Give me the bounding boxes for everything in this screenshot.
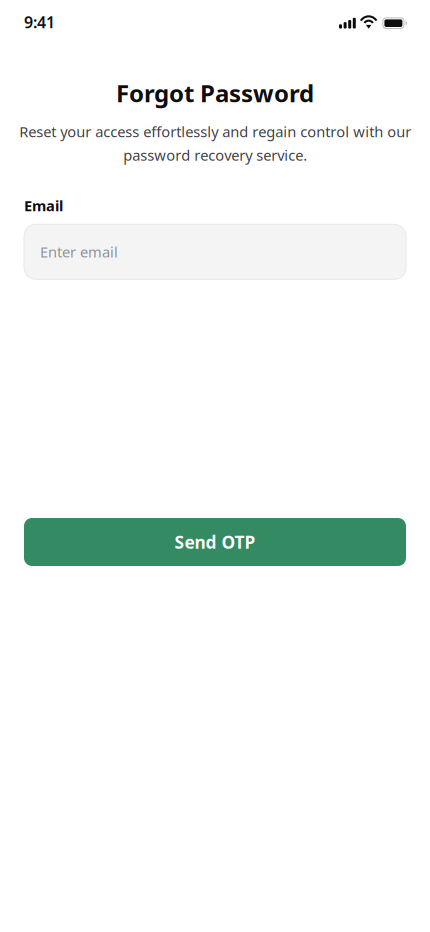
staticText: 9:41	[24, 11, 55, 33]
button[interactable]: Enter email	[24, 224, 406, 279]
staticText: Forgot Password	[116, 77, 314, 109]
staticText: Send OTP	[174, 530, 255, 553]
staticText: Reset your access effortlessly and regai…	[19, 122, 411, 165]
button[interactable]: Send OTP	[24, 518, 406, 566]
staticText: Email	[24, 196, 63, 215]
staticText: Enter email	[40, 242, 118, 262]
